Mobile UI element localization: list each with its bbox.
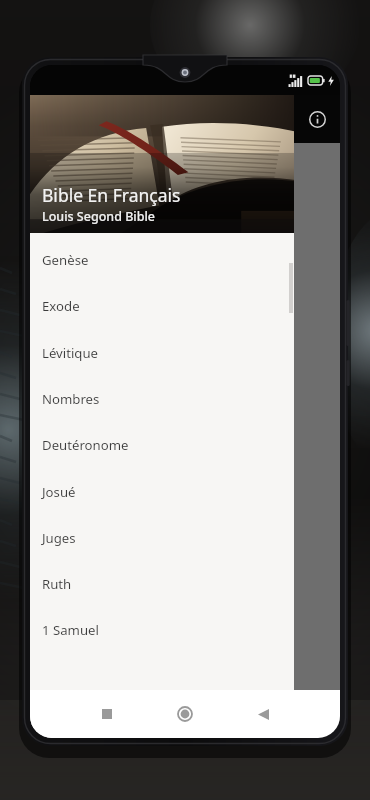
staticText: Exode <box>42 297 80 315</box>
staticText: Genèse <box>42 251 89 269</box>
staticText: Juges <box>42 529 76 547</box>
button[interactable]: Lévitique <box>30 330 294 376</box>
button[interactable]: Josué <box>30 469 294 515</box>
button[interactable]: Juges <box>30 515 294 561</box>
staticText: Josué <box>42 483 76 501</box>
staticText: Ruth <box>42 575 72 593</box>
button[interactable]: Info <box>294 95 340 143</box>
staticText: Deutéronome <box>42 436 129 454</box>
button[interactable]: Exode <box>30 283 294 329</box>
button[interactable]: 1 Samuel <box>30 607 294 653</box>
button[interactable]: Back <box>248 699 278 729</box>
button[interactable]: Home <box>170 699 200 729</box>
staticText: Lévitique <box>42 344 99 362</box>
staticText: Bible En Français <box>42 183 181 207</box>
button[interactable]: Nombres <box>30 376 294 422</box>
staticText: 1 Samuel <box>42 621 99 639</box>
button[interactable]: Deutéronome <box>30 422 294 468</box>
staticText: Louis Segond Bible <box>42 208 155 225</box>
button[interactable]: Ruth <box>30 561 294 607</box>
button[interactable]: Recent apps <box>92 699 122 729</box>
button[interactable]: Genèse <box>30 237 294 283</box>
staticText: Nombres <box>42 390 100 408</box>
staticText: About <box>85 706 123 724</box>
button[interactable]: About <box>30 691 294 738</box>
